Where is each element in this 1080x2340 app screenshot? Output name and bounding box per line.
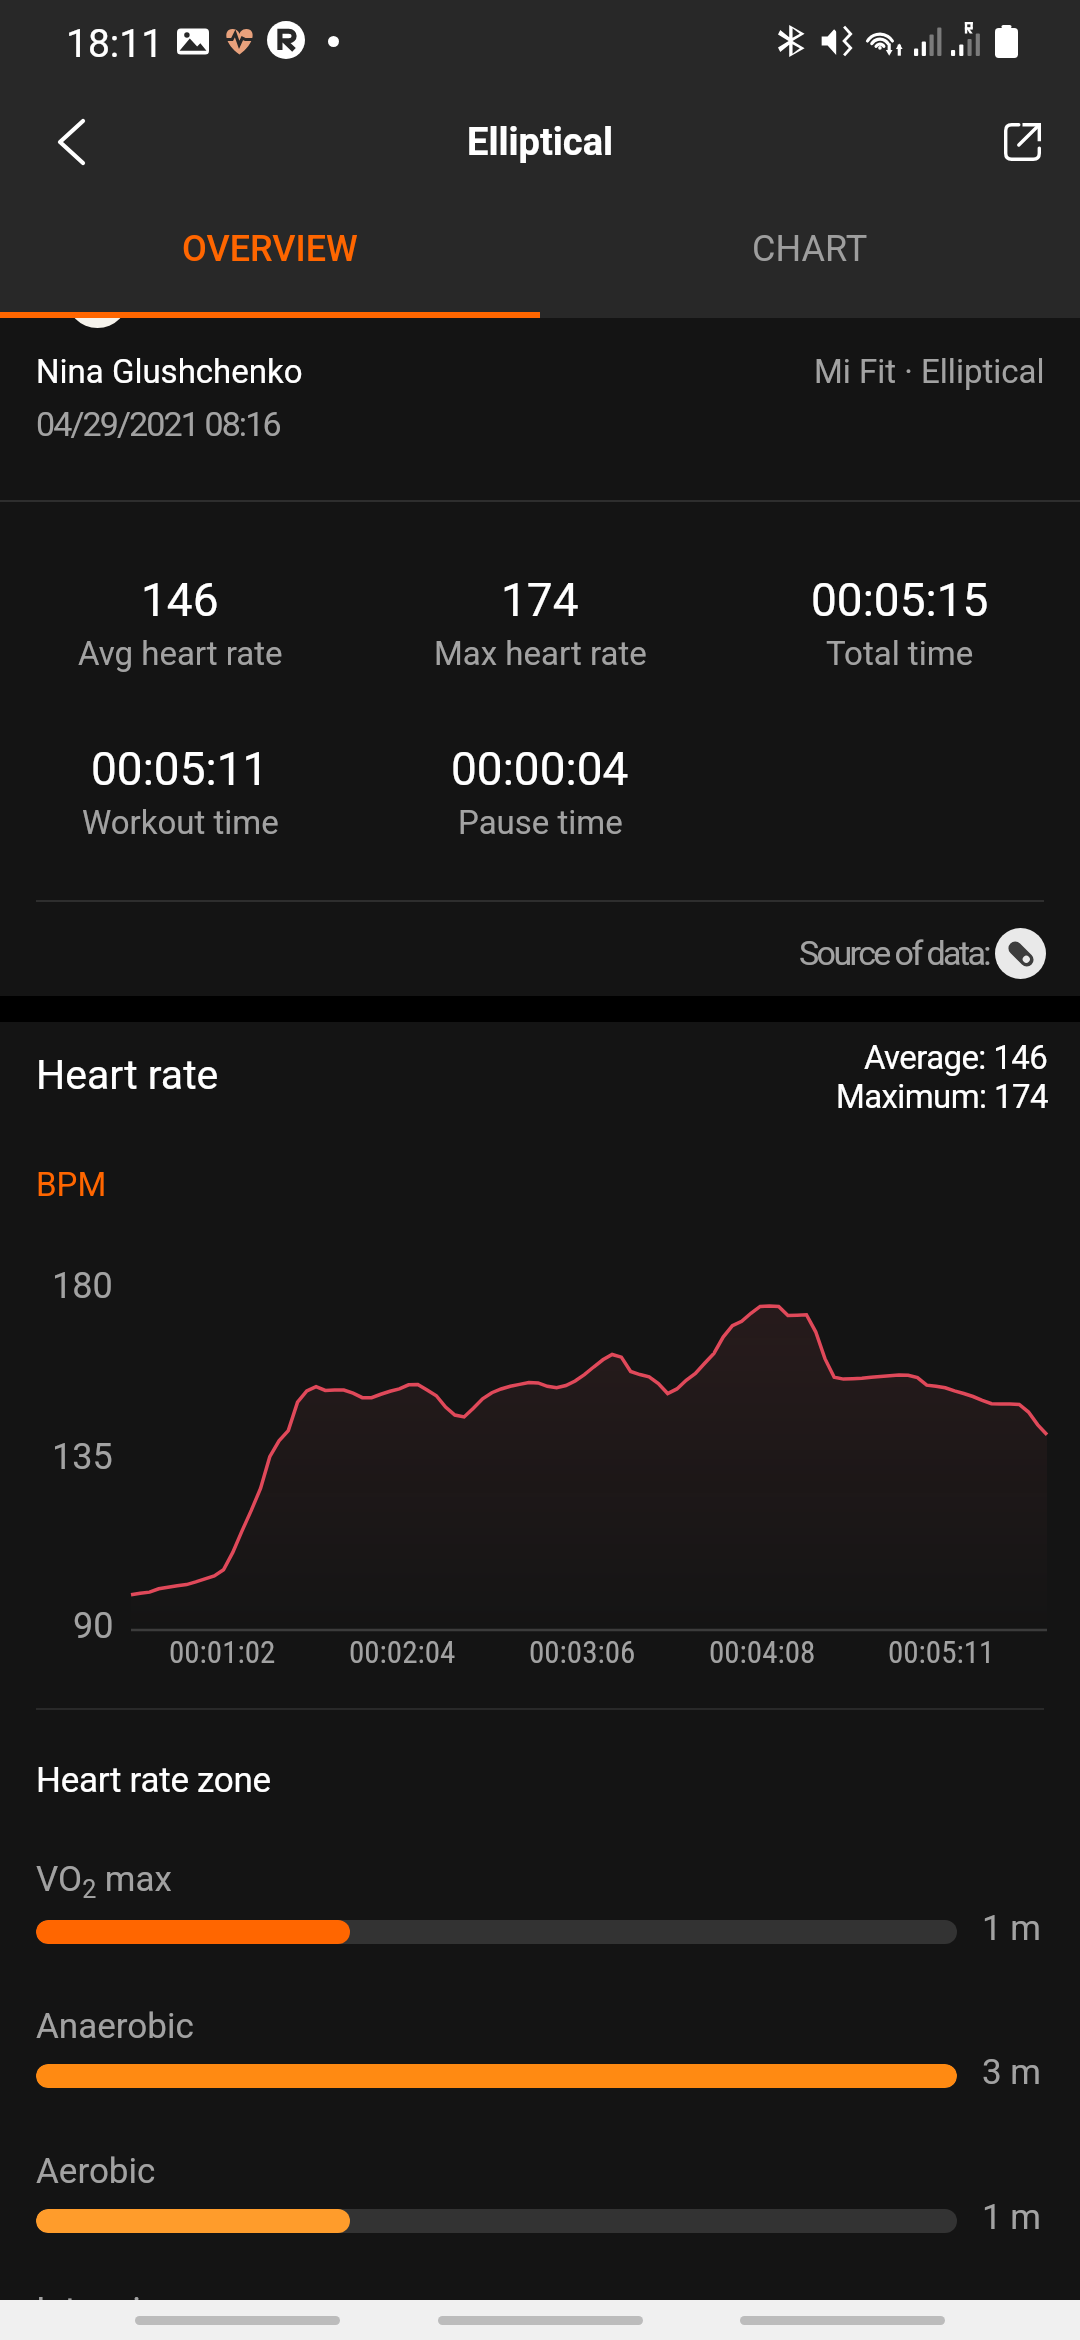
button[interactable]: Data source: Mi Band — [995, 928, 1046, 979]
staticText: 00:05:11 — [91, 742, 269, 796]
staticText: Avg heart rate — [78, 634, 283, 673]
button[interactable]: OVERVIEW — [0, 200, 540, 312]
staticText: Intensive — [36, 2290, 177, 2331]
staticText: 174 — [501, 573, 579, 627]
staticText: Workout time — [82, 803, 279, 842]
staticText: Average: 146 — [864, 1038, 1048, 1077]
button[interactable]: CHART — [540, 200, 1080, 312]
staticText: 00:01:02 — [169, 1634, 276, 1670]
button[interactable]: Back — [24, 84, 118, 200]
staticText: 00:04:08 — [709, 1634, 816, 1670]
staticText: Heart rate — [36, 1051, 219, 1099]
staticText: Mi Fit · Elliptical — [814, 352, 1045, 391]
staticText: CHART — [752, 228, 868, 270]
staticText: Maximum: 174 — [836, 1077, 1048, 1116]
staticText: Heart rate zone — [36, 1760, 271, 1801]
staticText: BPM — [36, 1165, 107, 1204]
staticText: 00:03:06 — [529, 1634, 636, 1670]
staticText: OVERVIEW — [182, 228, 358, 270]
staticText: 04/29/2021 08:16 — [36, 404, 280, 444]
staticText: 00:05:15 — [811, 573, 989, 627]
staticText: 00:00:04 — [451, 742, 629, 796]
staticText: 3 m — [982, 2052, 1042, 2093]
staticText: 180 — [52, 1265, 113, 1307]
staticText: Anaerobic — [36, 2006, 194, 2047]
staticText: Source of data: — [799, 933, 989, 973]
staticText: Elliptical — [467, 120, 614, 165]
staticText: Nina Glushchenko — [36, 352, 303, 391]
button[interactable]: Share — [964, 84, 1080, 200]
staticText: 135 — [52, 1436, 113, 1478]
staticText: 00:05:11 — [888, 1634, 995, 1670]
staticText: 1 m — [982, 1908, 1042, 1949]
staticText: 146 — [141, 573, 219, 627]
staticText: 00:02:04 — [349, 1634, 456, 1670]
staticText: 1 m — [982, 2197, 1042, 2238]
staticText: 18:11 — [66, 21, 164, 67]
staticText: Total time — [826, 634, 974, 673]
staticText: Pause time — [458, 803, 623, 842]
staticText: Max heart rate — [434, 634, 647, 673]
staticText: 90 — [73, 1605, 114, 1647]
staticText: VO2 max — [36, 1859, 172, 1905]
staticText: Aerobic — [36, 2151, 156, 2192]
